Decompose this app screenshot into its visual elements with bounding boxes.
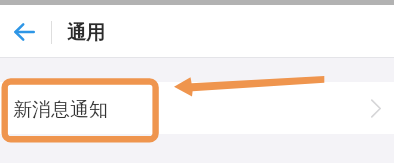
button[interactable]: 新消息通知 <box>0 82 394 134</box>
staticText: 通用 <box>67 21 105 45</box>
staticText: 新消息通知 <box>13 98 108 122</box>
button[interactable]: Back <box>6 14 42 50</box>
